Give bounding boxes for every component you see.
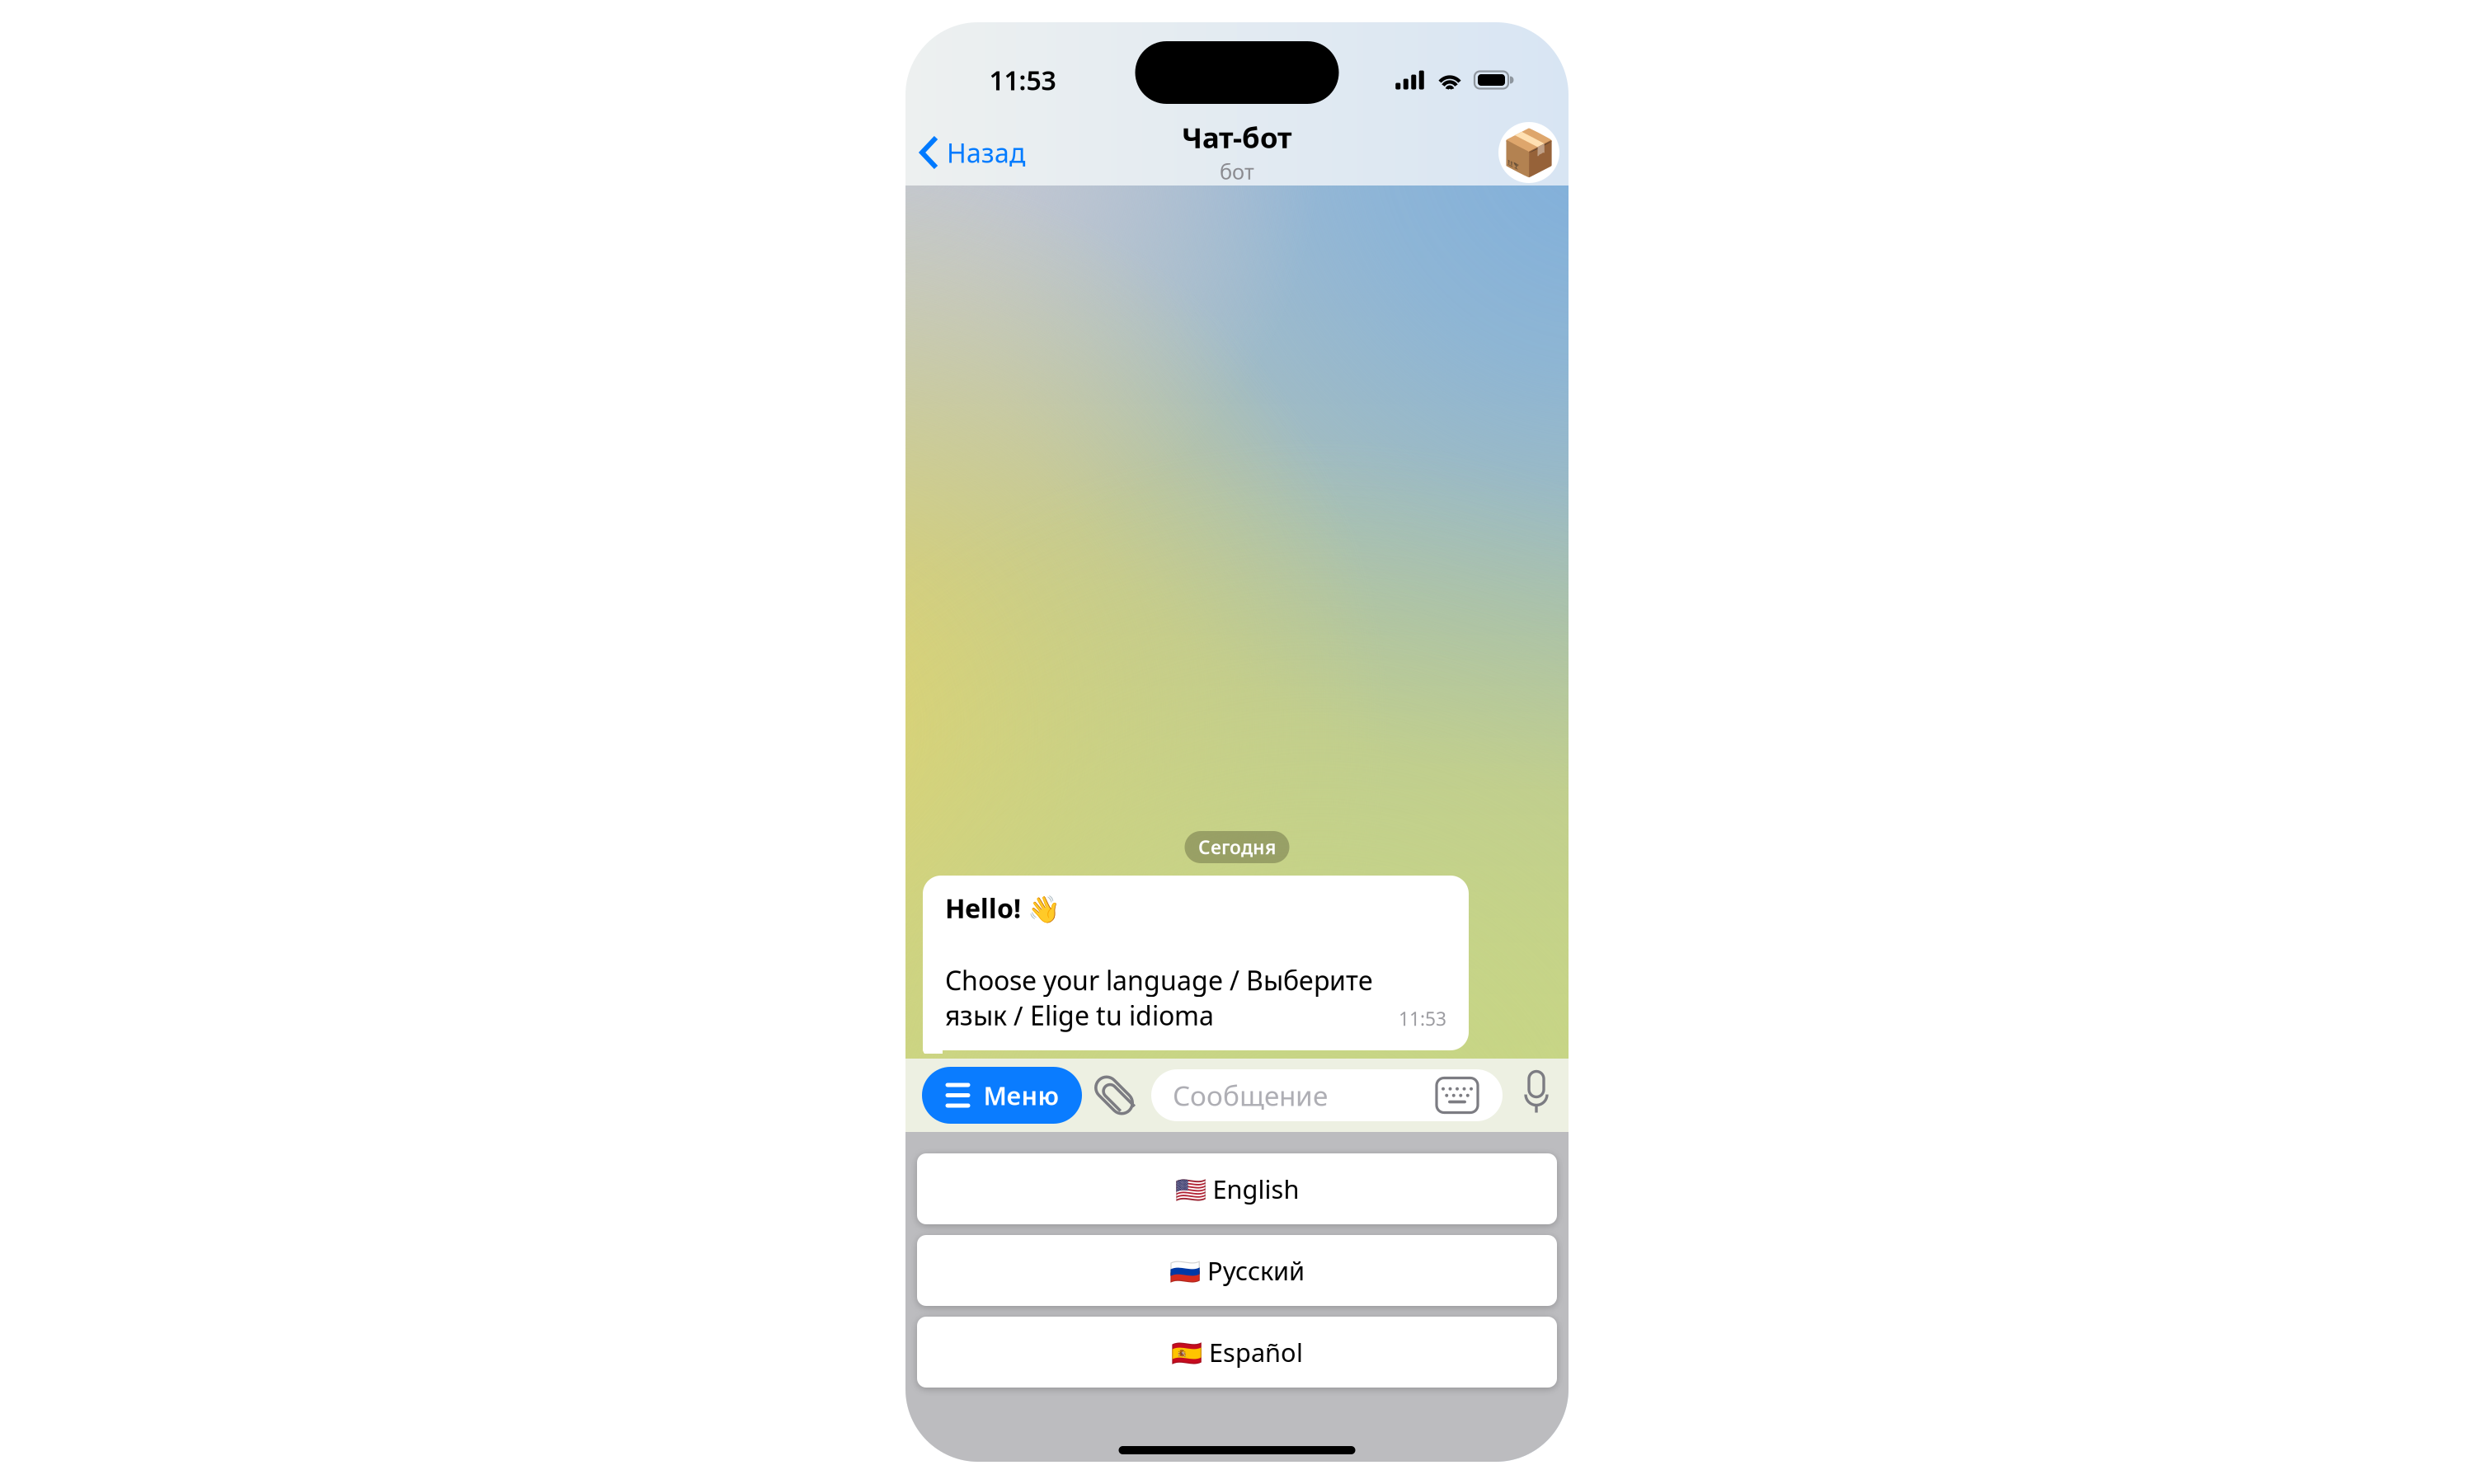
button[interactable]: Назад (905, 122, 1038, 183)
button[interactable]: 🇺🇸 English (917, 1153, 1557, 1224)
staticText: 🇺🇸 English (1175, 1172, 1299, 1206)
staticText: 📦 (1501, 127, 1557, 178)
staticText: 11:53 (1399, 1006, 1446, 1031)
staticText: Choose your language / Выберите (945, 963, 1373, 998)
staticText: Меню (983, 1078, 1058, 1112)
staticText: Сегодня (1198, 835, 1276, 859)
button[interactable]: 🇷🇺 Русский (917, 1235, 1557, 1306)
button[interactable]: Меню (922, 1067, 1082, 1124)
staticText: Сообщение (1173, 1077, 1328, 1114)
staticText: бот (1220, 158, 1254, 185)
button[interactable]: 🇪🇸 Español (917, 1317, 1557, 1388)
staticText: 🇪🇸 Español (1171, 1335, 1303, 1369)
button[interactable]: Прикрепить (1096, 1073, 1132, 1117)
button[interactable]: Профиль бота (1489, 122, 1569, 183)
button[interactable]: Клавиатура (1437, 1077, 1478, 1113)
staticText: 🇷🇺 Русский (1169, 1254, 1305, 1287)
staticText: Чат-бот (1182, 118, 1292, 156)
staticText: Hello! 👋 (945, 890, 1061, 925)
staticText: Назад (947, 135, 1025, 170)
button[interactable]: Голосовое сообщение (1522, 1073, 1550, 1117)
staticText: 11:53 (989, 62, 1056, 98)
staticText: язык / Elige tu idioma (945, 998, 1214, 1033)
